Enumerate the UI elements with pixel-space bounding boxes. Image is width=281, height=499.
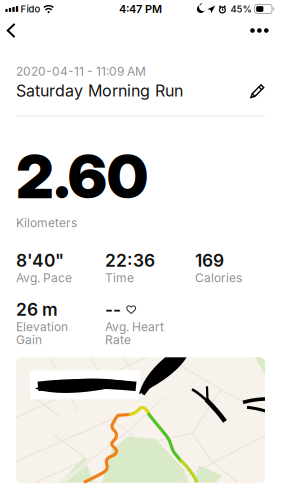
staticText: Rate bbox=[105, 333, 131, 347]
staticText: Gain bbox=[16, 333, 42, 347]
staticText: Elevation bbox=[16, 320, 68, 334]
staticText: Avg. Heart bbox=[105, 320, 164, 334]
staticText: Fido bbox=[20, 3, 40, 15]
staticText: 4:47 PM bbox=[119, 2, 162, 16]
staticText: Kilometers bbox=[16, 216, 77, 230]
staticText: 169 bbox=[195, 250, 224, 271]
staticText: 45% bbox=[230, 3, 251, 15]
staticText: 22:36 bbox=[105, 250, 155, 271]
staticText: 8'40" bbox=[16, 250, 64, 271]
button[interactable]: Back bbox=[0, 18, 30, 43]
staticText: 2020-04-11 - 11:09 AM bbox=[16, 64, 146, 79]
staticText: Calories bbox=[195, 271, 242, 285]
staticText: 2.60 bbox=[16, 140, 148, 213]
staticText: -- bbox=[105, 299, 121, 320]
button[interactable]: More options bbox=[236, 18, 281, 43]
button[interactable]: Edit workout bbox=[250, 83, 265, 98]
staticText: 26 m bbox=[16, 299, 58, 320]
staticText: Saturday Morning Run bbox=[16, 81, 183, 100]
staticText: Time bbox=[105, 271, 134, 285]
staticText: Avg. Pace bbox=[16, 271, 72, 285]
